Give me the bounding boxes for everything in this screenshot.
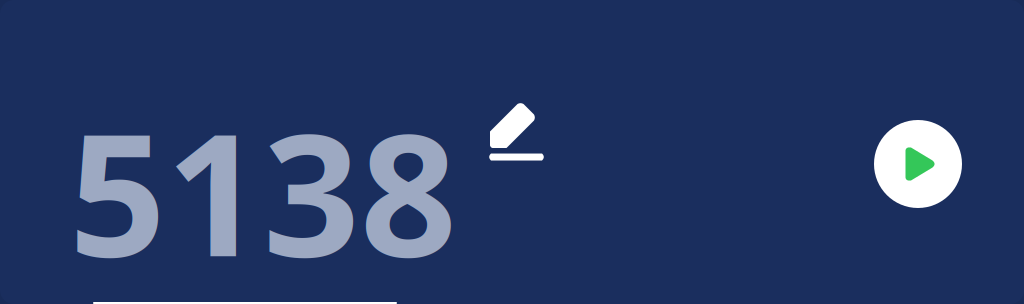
- button[interactable]: Edit: [481, 102, 549, 162]
- staticText: 5138: [69, 78, 457, 303]
- button[interactable]: Play: [874, 120, 962, 208]
